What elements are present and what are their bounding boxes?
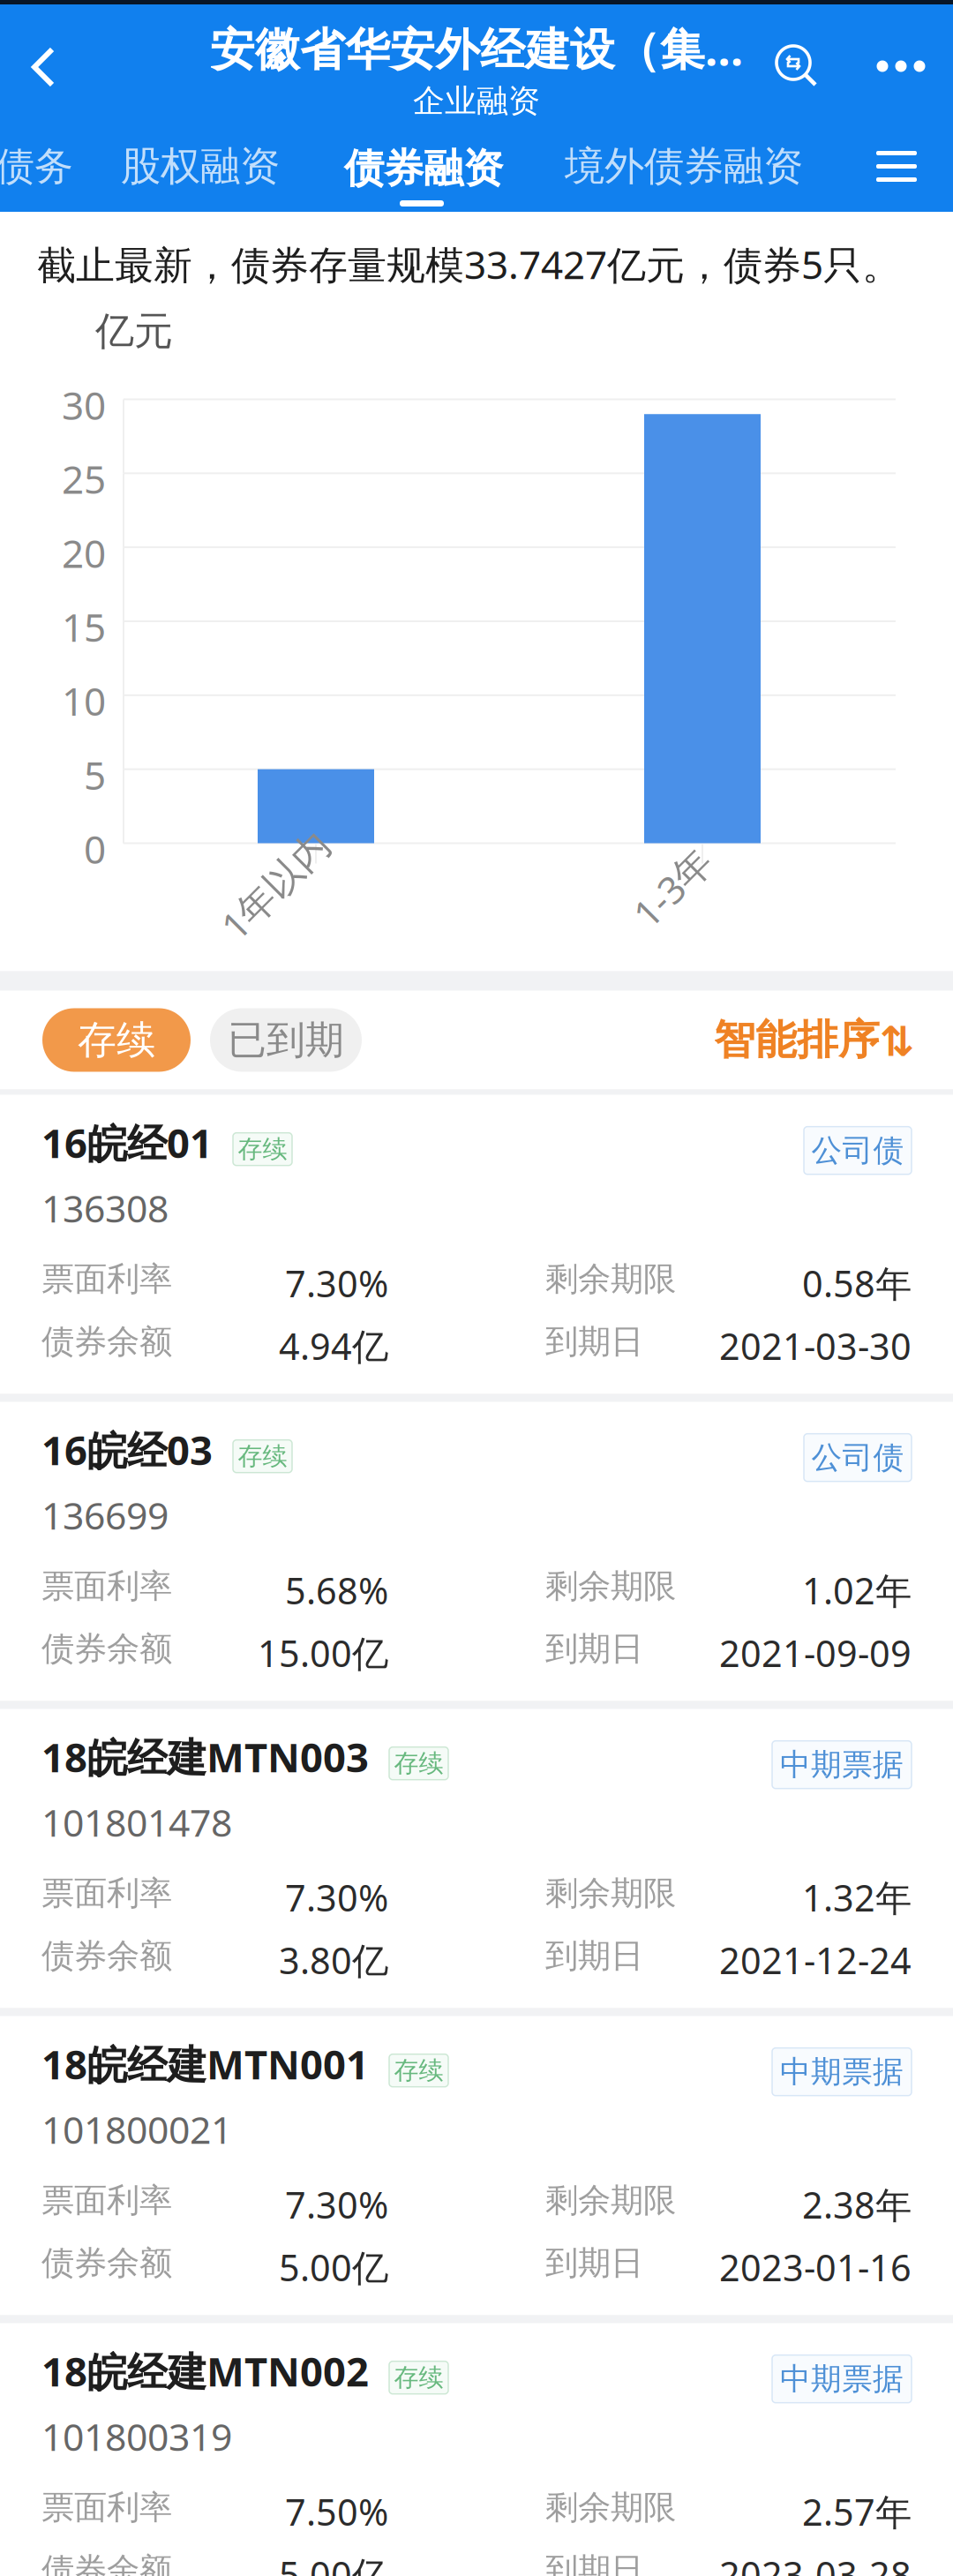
staticText: 18皖经建MTN002 (41, 2344, 369, 2397)
staticText: 7.30% (285, 1873, 388, 1922)
staticText: 2021-09-09 (719, 1629, 912, 1677)
staticText: 5 (84, 749, 106, 800)
staticText: 存续 (394, 2362, 443, 2393)
button[interactable]: 境外债券融资 (565, 121, 847, 212)
staticText: 票面利率 (41, 1873, 172, 1914)
staticText: 票面利率 (41, 2487, 172, 2528)
staticText: 20 (62, 527, 106, 578)
staticText: 剩余期限 (545, 1873, 676, 1914)
staticText: 截止最新，债券存量规模33.7427亿元，债券5只。 (37, 238, 901, 290)
staticText: 1.32年 (802, 1873, 912, 1922)
staticText: 剩余期限 (545, 2487, 676, 2528)
staticText: 1年以内 (208, 860, 343, 910)
button[interactable]: 股权融资 (121, 121, 315, 212)
staticText: 15 (62, 601, 106, 653)
staticText: 到期日 (545, 2550, 643, 2576)
staticText: 票面利率 (41, 1566, 172, 1606)
staticText: 剩余期限 (545, 2180, 676, 2221)
staticText: 到期日 (545, 1322, 643, 1362)
staticText: 债券余额 (41, 1629, 172, 1669)
staticText: 0.58年 (802, 1259, 912, 1307)
staticText: 2023-03-28 (719, 2550, 912, 2576)
staticText: 16皖经01 (41, 1116, 213, 1169)
button[interactable]: 存续 (42, 1008, 191, 1072)
staticText: 存续 (238, 1441, 287, 1471)
staticText: 0 (84, 823, 106, 874)
staticText: 债券融资 (344, 144, 503, 193)
staticText: 2.57年 (802, 2487, 912, 2536)
staticText: 18皖经建MTN003 (41, 1730, 369, 1783)
staticText: 到期日 (545, 1629, 643, 1669)
staticText: 债务 (0, 143, 73, 190)
button[interactable]: 智能排序⇅ (714, 1015, 914, 1065)
staticText: 企业融资 (413, 81, 540, 120)
staticText: 公司债 (811, 1132, 904, 1169)
staticText: 136308 (41, 1183, 169, 1233)
staticText: 101801478 (41, 1797, 232, 1847)
staticText: 公司债 (811, 1439, 904, 1476)
button[interactable]: 18皖经建MTN002 (0, 2323, 953, 2576)
staticText: 2021-12-24 (719, 1936, 912, 1984)
staticText: 中期票据 (780, 1746, 904, 1784)
staticText: 101800319 (41, 2411, 232, 2461)
staticText: 到期日 (545, 1936, 643, 1976)
button[interactable]: 18皖经建MTN001 (0, 2016, 953, 2315)
button[interactable]: Menu (868, 121, 925, 212)
staticText: 剩余期限 (545, 1259, 676, 1299)
staticText: 10 (62, 675, 106, 726)
staticText: 安徽省华安外经建设（集… (210, 19, 743, 78)
staticText: 剩余期限 (545, 1566, 676, 1606)
staticText: 4.94亿 (279, 1322, 388, 1370)
staticText: 30 (62, 379, 106, 431)
staticText: 7.30% (285, 2180, 388, 2229)
staticText: 智能排序⇅ (714, 1015, 914, 1065)
staticText: 中期票据 (780, 2360, 904, 2398)
staticText: 3.80亿 (279, 1936, 388, 1984)
staticText: 存续 (394, 2055, 443, 2086)
staticText: 到期日 (545, 2243, 643, 2283)
staticText: 债券余额 (41, 2243, 172, 2283)
staticText: 1-3年 (626, 862, 719, 912)
staticText: 5.68% (285, 1566, 388, 1614)
staticText: 2023-01-16 (719, 2243, 912, 2291)
staticText: 101800021 (41, 2104, 232, 2154)
button[interactable]: 18皖经建MTN003 (0, 1709, 953, 2008)
staticText: 15.00亿 (258, 1629, 388, 1677)
staticText: 存续 (238, 1134, 287, 1164)
staticText: 25 (62, 453, 106, 505)
staticText: 1.02年 (802, 1566, 912, 1614)
button[interactable]: Search (754, 4, 849, 121)
staticText: 股权融资 (121, 142, 280, 191)
staticText: 2021-03-30 (719, 1322, 912, 1370)
staticText: 中期票据 (780, 2053, 904, 2091)
button[interactable]: 债券融资 (344, 121, 512, 212)
staticText: 18皖经建MTN001 (41, 2037, 369, 2090)
staticText: 存续 (394, 1748, 443, 1779)
staticText: 2.38年 (802, 2180, 912, 2229)
staticText: 票面利率 (41, 1259, 172, 1299)
staticText: 16皖经03 (41, 1423, 213, 1476)
staticText: 7.30% (285, 1259, 388, 1307)
staticText: 136699 (41, 1490, 169, 1540)
button[interactable]: More (849, 4, 953, 121)
staticText: 存续 (78, 1016, 155, 1064)
staticText: 7.50% (285, 2487, 388, 2536)
staticText: 债券余额 (41, 1936, 172, 1976)
button[interactable]: 债务 (0, 121, 172, 212)
staticText: 债券余额 (41, 1322, 172, 1362)
button[interactable]: 16皖经03 (0, 1402, 953, 1701)
staticText: 5.00亿 (279, 2550, 388, 2576)
staticText: 债券余额 (41, 2550, 172, 2576)
button[interactable]: 16皖经01 (0, 1095, 953, 1394)
staticText: 5.00亿 (279, 2243, 388, 2291)
staticText: 已到期 (228, 1016, 344, 1064)
button[interactable]: Back (0, 4, 85, 121)
button[interactable]: 已到期 (210, 1008, 362, 1072)
staticText: 亿元 (95, 307, 173, 355)
staticText: 境外债券融资 (565, 142, 803, 191)
staticText: 票面利率 (41, 2180, 172, 2221)
